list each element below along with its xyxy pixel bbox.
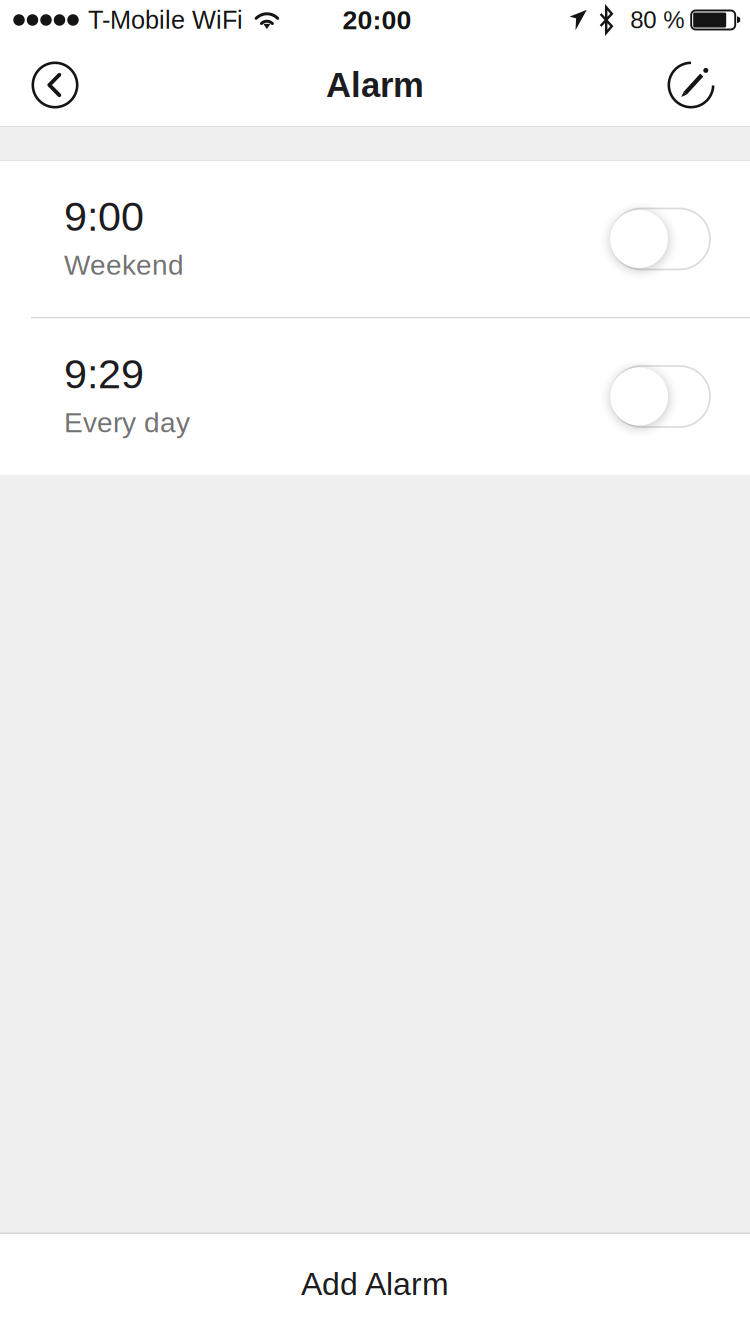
staticText: Weekend bbox=[64, 249, 184, 281]
button[interactable]: 9:29 bbox=[0, 318, 750, 474]
button[interactable]: Back bbox=[0, 48, 90, 126]
staticText: 20:00 bbox=[342, 5, 411, 35]
staticText: T-Mobile WiFi bbox=[88, 6, 243, 34]
staticText: 9:00 bbox=[64, 193, 144, 239]
button[interactable]: 9:00 bbox=[0, 161, 750, 317]
staticText: Add Alarm bbox=[301, 1266, 449, 1302]
staticText: 80 % bbox=[630, 7, 684, 33]
staticText: 9:29 bbox=[64, 351, 144, 397]
button[interactable]: Edit bbox=[656, 48, 750, 126]
staticText: Every day bbox=[64, 407, 190, 438]
button[interactable]: Add Alarm bbox=[0, 1234, 750, 1334]
staticText: Alarm bbox=[326, 66, 424, 104]
